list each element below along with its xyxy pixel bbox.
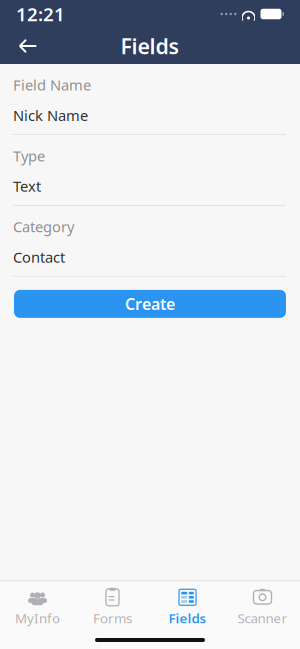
button[interactable]: Create [14, 290, 286, 318]
staticText: Nick Name [13, 105, 88, 125]
staticText: Fields [168, 609, 206, 627]
button[interactable]: Fields [150, 581, 225, 631]
staticText: 12:21 [16, 2, 65, 26]
staticText: Fields [120, 32, 179, 60]
staticText: Category [13, 217, 74, 236]
staticText: Forms [93, 609, 132, 627]
staticText: Text [13, 176, 41, 196]
staticText: Create [125, 293, 175, 314]
staticText: Scanner [237, 609, 287, 627]
staticText: Field Name [13, 75, 91, 94]
staticText: MyInfo [15, 609, 60, 627]
staticText: Type [13, 146, 45, 165]
button[interactable]: Scanner [225, 581, 300, 631]
button[interactable]: MyInfo [0, 581, 75, 631]
button[interactable]: Forms [75, 581, 150, 631]
staticText: Contact [13, 247, 65, 267]
button[interactable]: Back [6, 28, 50, 64]
